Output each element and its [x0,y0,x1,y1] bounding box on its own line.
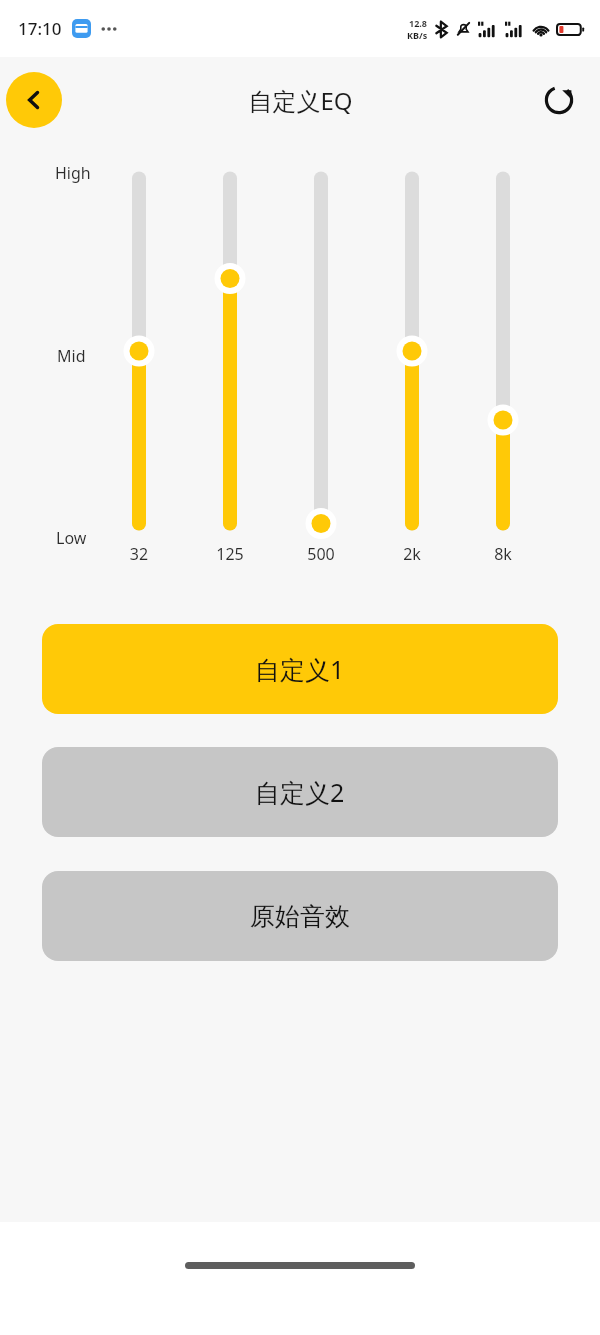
button[interactable] [390,163,434,539]
staticText: 自定义2 [255,775,345,809]
button[interactable] [481,163,525,539]
button[interactable]: 自定义2 [42,747,558,837]
staticText: 2k [382,543,442,565]
staticText: 自定义1 [255,652,345,686]
staticText: 12.8 [409,17,427,29]
staticText: 500 [291,543,351,565]
staticText: 8k [473,543,533,565]
button[interactable] [299,163,343,539]
button[interactable]: 自定义1 [42,624,558,714]
button[interactable]: 原始音效 [42,871,558,961]
button[interactable]: Back [6,72,62,128]
staticText: Mid [57,345,86,367]
staticText: 32 [109,543,169,565]
button[interactable]: Reset [536,77,582,123]
staticText: KB/s [407,29,428,41]
staticText: 自定义EQ [248,84,353,117]
staticText: 17:10 [18,17,62,40]
staticText: 125 [200,543,260,565]
staticText: Low [56,527,87,549]
staticText: High [55,162,91,184]
button[interactable] [117,163,161,539]
staticText: 原始音效 [250,901,350,932]
button[interactable] [208,163,252,539]
